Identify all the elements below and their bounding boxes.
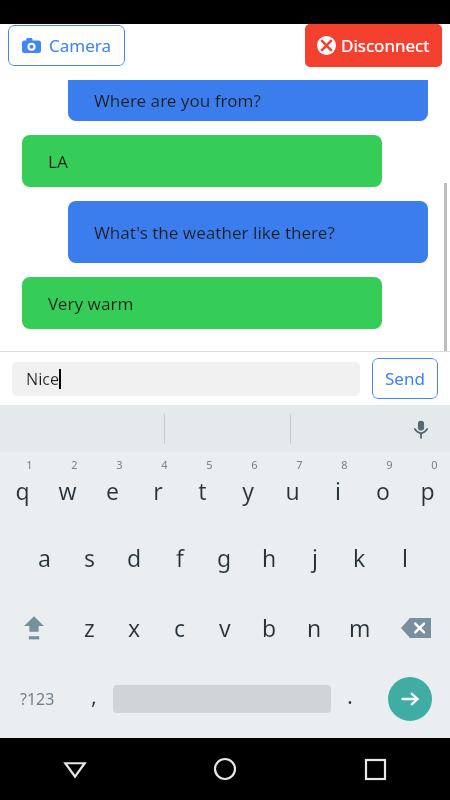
button[interactable]: 5 <box>180 452 225 522</box>
button[interactable]: . <box>331 663 369 734</box>
button[interactable]: z <box>67 592 112 663</box>
staticText: o <box>376 475 390 506</box>
button[interactable]: 0 <box>405 452 450 522</box>
staticText: . <box>347 680 353 710</box>
staticText: m <box>349 612 371 643</box>
staticText: f <box>176 542 184 573</box>
staticText: 6 <box>251 457 258 472</box>
staticText: , <box>91 680 97 710</box>
staticText: 8 <box>341 457 348 472</box>
staticText: 2 <box>71 457 78 472</box>
staticText: What's the weather like there? <box>94 221 335 244</box>
button[interactable]: b <box>247 592 292 663</box>
staticText: g <box>217 542 232 573</box>
staticText: a <box>38 542 51 573</box>
staticText: u <box>285 475 300 506</box>
button[interactable]: Very warm <box>22 277 382 329</box>
staticText: t <box>198 475 207 506</box>
staticText: q <box>15 475 30 506</box>
staticText: i <box>335 475 341 506</box>
staticText: h <box>262 542 277 573</box>
button[interactable]: Back <box>0 738 150 800</box>
staticText: 4 <box>161 457 168 472</box>
staticText: x <box>128 612 141 643</box>
staticText: c <box>174 612 186 643</box>
button[interactable]: 4 <box>135 452 180 522</box>
staticText: 7 <box>296 457 303 472</box>
button[interactable]: d <box>112 522 157 592</box>
button[interactable]: 7 <box>270 452 315 522</box>
button[interactable]: n <box>292 592 337 663</box>
staticText: Camera <box>49 34 111 57</box>
button[interactable]: Camera <box>8 25 125 66</box>
button[interactable]: 1 <box>0 452 45 522</box>
button[interactable]: a <box>22 522 67 592</box>
staticText: 0 <box>431 457 438 472</box>
staticText: Disconnect <box>341 34 430 57</box>
button[interactable]: LA <box>22 135 382 187</box>
button[interactable]: Enter <box>388 677 432 721</box>
button[interactable]: 8 <box>315 452 360 522</box>
button[interactable]: f <box>157 522 202 592</box>
button[interactable]: x <box>112 592 157 663</box>
button[interactable]: What's the weather like there? <box>68 201 428 263</box>
staticText: Very warm <box>48 292 134 315</box>
button[interactable]: v <box>202 592 247 663</box>
button[interactable]: m <box>337 592 382 663</box>
button[interactable]: Send <box>372 358 438 399</box>
button[interactable]: k <box>337 522 382 592</box>
staticText: Nice <box>26 368 59 390</box>
staticText: w <box>58 475 77 506</box>
staticText: 1 <box>26 457 33 472</box>
button[interactable]: Shift <box>0 592 67 663</box>
staticText: 5 <box>206 457 213 472</box>
button[interactable]: 9 <box>360 452 405 522</box>
button[interactable]: c <box>157 592 202 663</box>
staticText: y <box>242 475 254 506</box>
button[interactable]: j <box>292 522 337 592</box>
staticText: Where are you from? <box>94 89 261 112</box>
button[interactable]: Recent apps <box>300 738 450 800</box>
button[interactable]: l <box>382 522 427 592</box>
button[interactable]: Backspace <box>382 592 450 663</box>
staticText: Send <box>385 367 425 390</box>
staticText: s <box>84 542 96 573</box>
button[interactable]: , <box>75 663 113 734</box>
staticText: 3 <box>116 457 123 472</box>
staticText: l <box>402 542 408 573</box>
staticText: j <box>312 542 318 573</box>
staticText: p <box>420 475 435 506</box>
button[interactable]: g <box>202 522 247 592</box>
button[interactable]: ?123 <box>0 663 75 734</box>
staticText: k <box>353 542 366 573</box>
staticText: r <box>153 475 163 506</box>
button[interactable]: Voice input <box>406 414 436 444</box>
staticText: 9 <box>386 457 393 472</box>
staticText: v <box>219 612 231 643</box>
staticText: d <box>127 542 142 573</box>
staticText: LA <box>48 150 68 173</box>
button[interactable]: h <box>247 522 292 592</box>
button[interactable]: Where are you from? <box>68 80 428 121</box>
staticText: ?123 <box>20 688 55 710</box>
button[interactable]: s <box>67 522 112 592</box>
button[interactable]: Nice <box>12 362 360 396</box>
staticText: e <box>106 475 119 506</box>
button[interactable]: Disconnect <box>305 24 442 67</box>
button[interactable]: 3 <box>90 452 135 522</box>
staticText: z <box>84 612 95 643</box>
button[interactable]: Home <box>150 738 300 800</box>
button[interactable]: 2 <box>45 452 90 522</box>
staticText: n <box>307 612 322 643</box>
staticText: b <box>262 612 277 643</box>
button[interactable]: 6 <box>225 452 270 522</box>
